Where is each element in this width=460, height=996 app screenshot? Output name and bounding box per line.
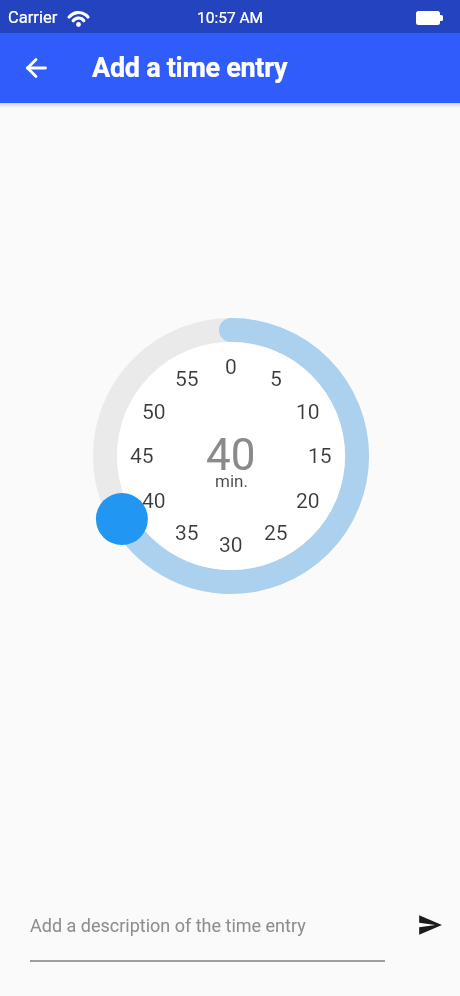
staticText: 40 [206, 429, 256, 481]
button[interactable]: Add a description of the time entry [30, 913, 385, 937]
staticText: Carrier [8, 8, 58, 27]
staticText: 40 [142, 489, 166, 514]
staticText: 30 [219, 533, 243, 558]
staticText: 25 [264, 521, 288, 546]
staticText: 0 [225, 355, 237, 380]
staticText: 5 [270, 367, 282, 392]
staticText: 10:57 AM [197, 9, 264, 27]
staticText: min. [215, 471, 248, 491]
staticText: 20 [296, 489, 320, 514]
staticText: 10 [296, 400, 320, 425]
button[interactable] [12, 44, 60, 92]
staticText: 35 [175, 521, 199, 546]
staticText: 50 [142, 400, 166, 425]
staticText: 15 [308, 444, 332, 469]
staticText: Add a time entry [92, 52, 288, 84]
staticText: 45 [130, 444, 154, 469]
staticText: Add a description of the time entry [30, 915, 306, 936]
staticText: 55 [175, 367, 199, 392]
button[interactable] [408, 903, 452, 947]
